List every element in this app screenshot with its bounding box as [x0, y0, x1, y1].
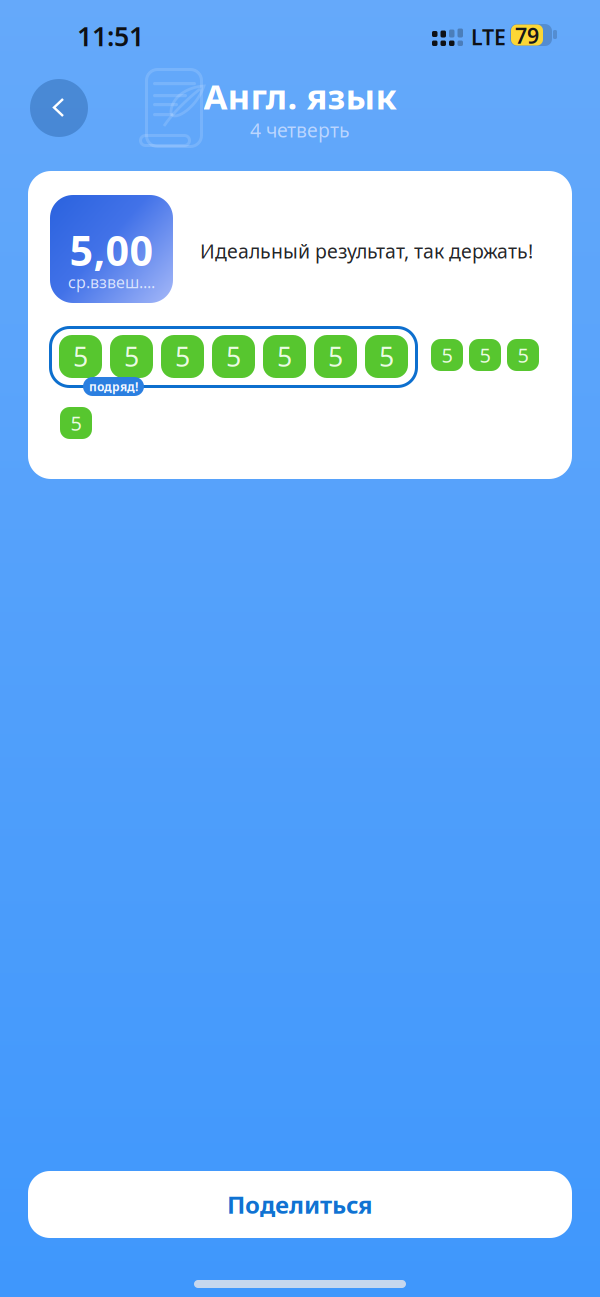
staticText: Англ. язык [203, 73, 396, 119]
staticText: 5 [124, 339, 139, 374]
staticText: 4 четверть [250, 117, 350, 143]
staticText: 5 [70, 410, 81, 436]
staticText: 5 [328, 339, 343, 374]
staticText: LTE [471, 23, 506, 51]
staticText: 5 [175, 339, 190, 374]
button[interactable]: Back [30, 79, 88, 137]
staticText: Идеальный результат, так держать! [200, 238, 533, 264]
staticText: 5 [379, 339, 394, 374]
staticText: Поделиться [227, 1189, 373, 1220]
staticText: подряд! [89, 378, 138, 394]
staticText: 5 [73, 339, 88, 374]
staticText: 5 [277, 339, 292, 374]
staticText: 79 [515, 21, 539, 50]
staticText: 5,00 [69, 223, 153, 277]
staticText: 5 [226, 339, 241, 374]
staticText: 5 [517, 342, 528, 368]
staticText: ср.взвеш.... [68, 271, 155, 293]
staticText: 5 [479, 342, 490, 368]
staticText: 11:51 [77, 18, 144, 54]
staticText: 5 [441, 342, 452, 368]
button[interactable]: Поделиться [28, 1171, 572, 1238]
